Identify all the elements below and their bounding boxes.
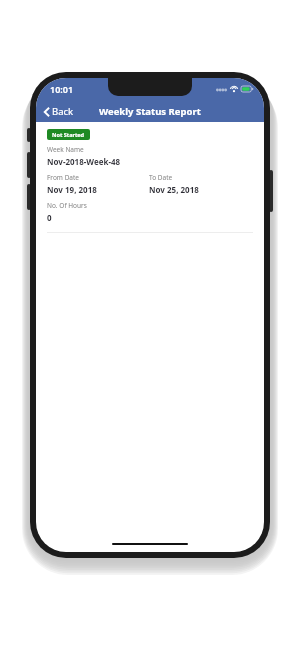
staticText: Nov 25, 2018 xyxy=(149,184,199,195)
staticText: Back xyxy=(52,105,74,118)
staticText: 0 xyxy=(47,212,52,223)
staticText: Nov 19, 2018 xyxy=(47,184,97,195)
other: Back xyxy=(44,107,50,117)
staticText: Not Started xyxy=(52,131,85,138)
staticText: From Date xyxy=(47,173,80,182)
staticText: Weekly Status Report xyxy=(99,105,201,118)
staticText: Week Name xyxy=(47,145,84,154)
staticText: Nov-2018-Week-48 xyxy=(47,156,121,167)
staticText: No. Of Hours xyxy=(47,201,87,210)
button[interactable]: Back xyxy=(36,105,80,118)
button[interactable]: Not Started xyxy=(47,129,90,140)
staticText: 10:01 xyxy=(50,83,74,95)
staticText: To Date xyxy=(149,173,173,182)
